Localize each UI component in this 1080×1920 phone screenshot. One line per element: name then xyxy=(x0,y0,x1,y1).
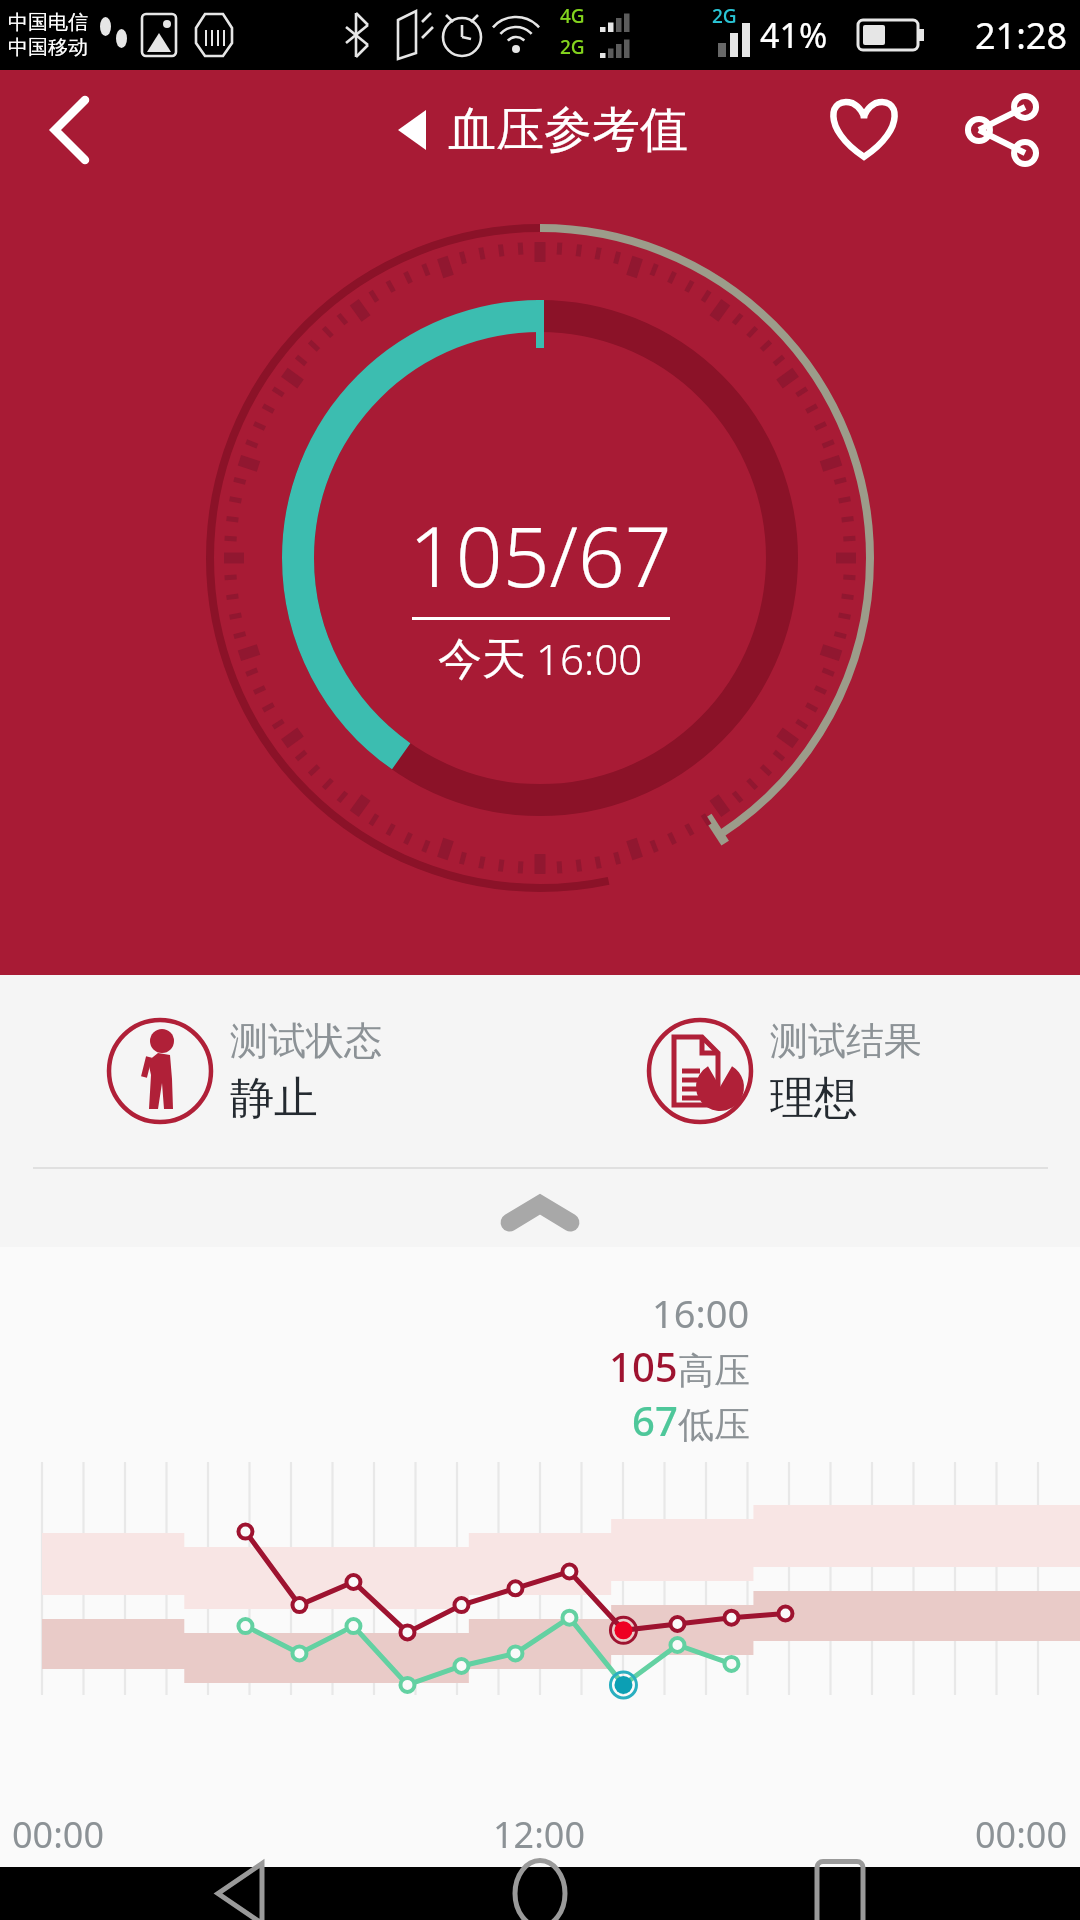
staticText: 00:00 xyxy=(12,1810,105,1859)
button[interactable]: Share xyxy=(954,82,1050,178)
staticText: 中国电信 xyxy=(8,10,88,35)
staticText: 12:00 xyxy=(493,1810,586,1859)
button[interactable]: Favorite xyxy=(816,82,912,178)
staticText: 105 xyxy=(609,1339,678,1393)
button[interactable]: Collapse xyxy=(500,1196,580,1230)
button[interactable]: Back xyxy=(180,1867,300,1920)
staticText: 21:28 xyxy=(975,11,1068,60)
staticText: 2G xyxy=(712,3,737,29)
button[interactable]: 测试结果 xyxy=(540,975,1080,1167)
staticText: 低压 xyxy=(678,1402,750,1447)
button[interactable]: 测试状态 xyxy=(0,975,540,1167)
staticText: 105/67 xyxy=(409,499,672,611)
staticText: 静止 xyxy=(230,1071,318,1126)
staticText: 理想 xyxy=(770,1071,858,1126)
staticText: 高压 xyxy=(678,1348,750,1393)
button[interactable]: Recents xyxy=(780,1867,900,1920)
staticText: 00:00 xyxy=(975,1810,1068,1859)
staticText: 血压参考值 xyxy=(448,100,688,160)
staticText: 中国移动 xyxy=(8,35,88,60)
staticText: 今天 xyxy=(438,632,526,687)
button[interactable]: Home xyxy=(480,1867,600,1920)
staticText: 测试结果 xyxy=(770,1017,922,1065)
staticText: 67 xyxy=(632,1393,678,1447)
staticText: 测试状态 xyxy=(230,1017,382,1065)
staticText: 16:00 xyxy=(536,630,643,687)
button[interactable]: Back xyxy=(24,85,114,175)
staticText: 2G xyxy=(560,34,585,60)
staticText: 41% xyxy=(760,12,828,58)
staticText: 16:00 xyxy=(652,1287,750,1339)
staticText: 4G xyxy=(560,3,585,29)
